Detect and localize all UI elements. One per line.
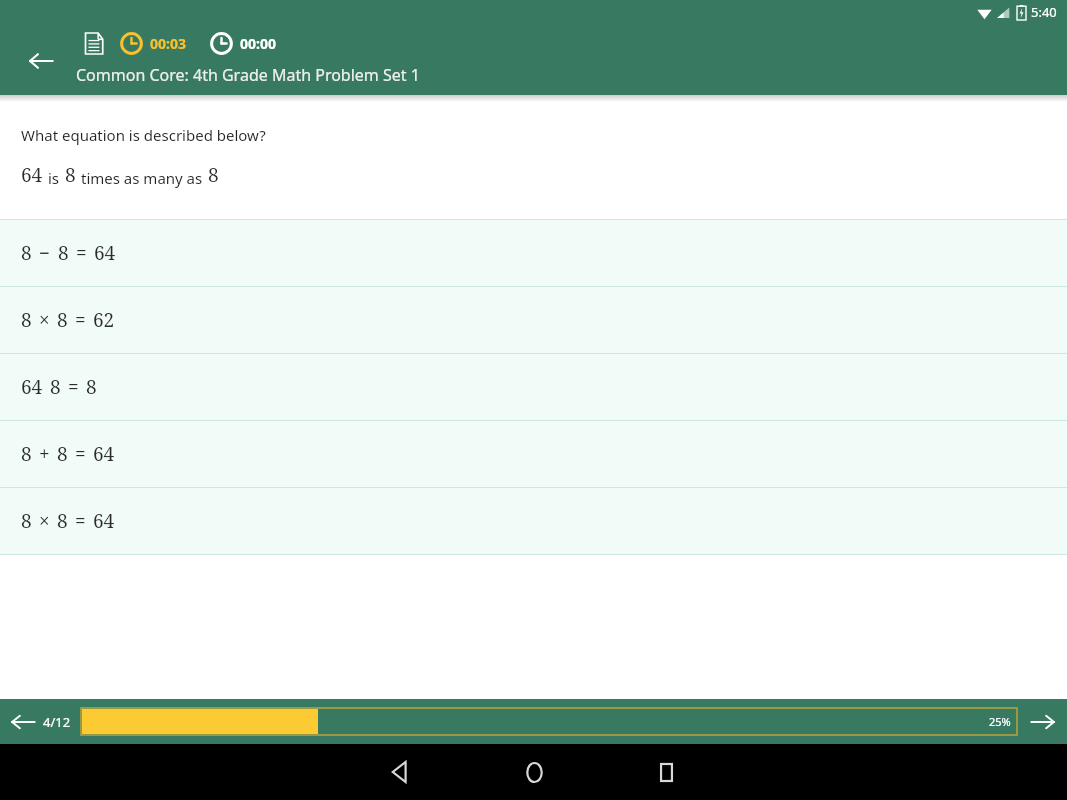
staticText: 64: [21, 162, 43, 188]
staticText: +: [39, 441, 50, 467]
staticText: 8: [58, 240, 69, 266]
staticText: 4/12: [43, 713, 71, 731]
button[interactable]: 00:03: [120, 32, 186, 55]
button[interactable]: 64: [0, 354, 1067, 420]
staticText: 64: [94, 240, 116, 266]
staticText: 64: [93, 508, 115, 534]
staticText: What equation is described below?: [21, 125, 266, 145]
button[interactable]: 8: [0, 421, 1067, 487]
button[interactable]: Recent apps: [642, 748, 690, 796]
staticText: ×: [39, 508, 50, 534]
staticText: Common Core: 4th Grade Math Problem Set …: [76, 64, 420, 86]
staticText: −: [39, 240, 51, 266]
staticText: 8: [57, 441, 68, 467]
button[interactable]: 8: [0, 220, 1067, 286]
staticText: 8: [65, 162, 76, 188]
staticText: =: [76, 240, 87, 266]
staticText: 00:00: [240, 34, 276, 53]
button[interactable]: Back: [378, 748, 426, 796]
button[interactable]: Previous question: [6, 705, 40, 739]
button[interactable]: Question list: [78, 28, 108, 58]
staticText: 5:40: [1031, 3, 1057, 21]
staticText: 8: [21, 307, 32, 333]
staticText: 8: [57, 307, 68, 333]
staticText: 8: [208, 162, 219, 188]
button[interactable]: 8: [0, 488, 1067, 554]
staticText: 64: [21, 374, 43, 400]
staticText: 8: [50, 374, 61, 400]
button[interactable]: 8: [0, 287, 1067, 353]
staticText: 25%: [989, 714, 1011, 729]
button[interactable]: Next question: [1025, 704, 1061, 740]
staticText: =: [75, 307, 86, 333]
button[interactable]: 00:00: [210, 32, 276, 55]
staticText: 8: [21, 508, 32, 534]
staticText: 62: [93, 307, 115, 333]
staticText: 8: [86, 374, 97, 400]
button[interactable]: Home: [510, 748, 558, 796]
staticText: 8: [21, 441, 32, 467]
staticText: =: [75, 441, 86, 467]
staticText: =: [68, 374, 79, 400]
staticText: 8: [57, 508, 68, 534]
staticText: 8: [21, 240, 32, 266]
button[interactable]: Back: [20, 40, 62, 82]
staticText: =: [75, 508, 86, 534]
staticText: ×: [39, 307, 50, 333]
staticText: 64: [93, 441, 115, 467]
staticText: times as many as: [81, 168, 203, 188]
staticText: 00:03: [150, 34, 186, 53]
staticText: is: [48, 168, 60, 188]
